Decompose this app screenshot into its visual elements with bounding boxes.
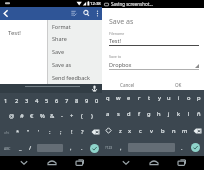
button[interactable]: 4	[32, 93, 42, 108]
button[interactable]: Share	[47, 32, 102, 45]
button[interactable]: Cancel	[102, 80, 153, 90]
button[interactable]: w	[113, 90, 124, 106]
button[interactable]: )	[87, 108, 97, 124]
button[interactable]: /	[26, 140, 35, 156]
button[interactable]: €	[27, 108, 37, 124]
button[interactable]: 6	[52, 93, 62, 108]
button[interactable]: x	[125, 122, 135, 139]
button[interactable]: Home	[38, 156, 66, 170]
button[interactable]: 8	[72, 93, 82, 108]
button[interactable]: "	[23, 124, 33, 140]
button[interactable]: n	[168, 122, 179, 139]
button[interactable]: p	[194, 90, 204, 106]
button[interactable]: Navigate up	[0, 7, 13, 20]
staticText: OK	[175, 82, 182, 88]
button[interactable]: @	[6, 108, 17, 124]
button[interactable]: 1	[0, 93, 11, 108]
staticText: d	[127, 110, 131, 118]
button[interactable]: Format	[47, 20, 102, 32]
button[interactable]: u	[164, 90, 174, 106]
button[interactable]: k	[174, 106, 184, 122]
button[interactable]: Send feedback	[47, 71, 102, 84]
button[interactable]: Back	[112, 156, 140, 170]
button[interactable]: Search	[80, 7, 93, 20]
button[interactable]: !	[66, 124, 77, 140]
button[interactable]: ,	[116, 139, 126, 156]
button[interactable]: j	[164, 106, 174, 122]
button[interactable]: Home	[140, 156, 168, 170]
staticText: )	[91, 112, 93, 120]
button[interactable]: Recent apps	[66, 156, 94, 170]
button[interactable]: Shift	[102, 122, 115, 139]
button[interactable]: Voice input	[91, 85, 98, 92]
staticText: 0	[95, 97, 99, 105]
button[interactable]: ABC	[0, 140, 14, 156]
button[interactable]: '	[33, 124, 44, 140]
staticText: ,	[70, 144, 72, 152]
staticText: l	[188, 110, 190, 118]
staticText: y	[158, 94, 161, 102]
button[interactable]: (	[77, 108, 87, 124]
button[interactable]: ?123	[102, 139, 116, 156]
button[interactable]: l	[184, 106, 194, 122]
button[interactable]: 7	[62, 93, 72, 108]
button[interactable]: :	[44, 124, 55, 140]
button[interactable]: 0	[92, 93, 102, 108]
staticText: Format	[52, 23, 71, 30]
button[interactable]: r	[134, 90, 144, 106]
button[interactable]: 2	[11, 93, 22, 108]
button[interactable]: .	[177, 139, 187, 156]
button[interactable]: 3	[22, 93, 32, 108]
button[interactable]: Enter	[90, 144, 99, 153]
button[interactable]: Save	[47, 45, 102, 58]
button[interactable]: ;	[55, 124, 66, 140]
button[interactable]: t	[144, 90, 154, 106]
button[interactable]: z	[115, 122, 125, 139]
button[interactable]: OK	[153, 80, 204, 90]
button[interactable]: Recent apps	[168, 156, 196, 170]
button[interactable]: 5	[42, 93, 52, 108]
button[interactable]: f	[134, 106, 144, 122]
button[interactable]: Delete	[88, 124, 102, 140]
button[interactable]: ñ	[194, 106, 204, 122]
staticText: Share	[52, 35, 67, 42]
button[interactable]: Delete	[190, 122, 204, 139]
button[interactable]: 9	[82, 93, 92, 108]
button[interactable]: +	[67, 108, 77, 124]
staticText: o	[187, 94, 191, 102]
button[interactable]: ?	[77, 124, 88, 140]
button[interactable]: Enter	[191, 143, 200, 152]
button[interactable]: a	[102, 106, 113, 122]
button[interactable]: y	[154, 90, 164, 106]
button[interactable]: More symbols	[0, 124, 13, 140]
button[interactable]: -	[57, 108, 67, 124]
button[interactable]: &	[47, 108, 57, 124]
button[interactable]: g	[144, 106, 154, 122]
button[interactable]: c	[135, 122, 146, 139]
button[interactable]: s	[113, 106, 124, 122]
button[interactable]: Dropbox	[109, 61, 199, 68]
button[interactable]: b	[157, 122, 168, 139]
button[interactable]: More options	[93, 9, 102, 18]
button[interactable]: i	[174, 90, 184, 106]
staticText: Save	[52, 48, 65, 55]
button[interactable]: Back	[10, 156, 38, 170]
button[interactable]: #	[17, 108, 27, 124]
button[interactable]: .	[76, 140, 87, 156]
button[interactable]: *	[13, 124, 23, 140]
staticText: w	[116, 94, 121, 102]
button[interactable]: %	[37, 108, 47, 124]
button[interactable]: v	[146, 122, 157, 139]
button[interactable]: Save as	[47, 58, 102, 71]
button[interactable]: _	[14, 140, 26, 156]
button[interactable]: q	[102, 90, 113, 106]
button[interactable]: ,	[65, 140, 76, 156]
button[interactable]: m	[179, 122, 190, 139]
button[interactable]: Insert	[67, 7, 80, 20]
button[interactable]: e	[124, 90, 134, 106]
button[interactable]: h	[154, 106, 164, 122]
button[interactable]: d	[124, 106, 134, 122]
button[interactable]: o	[184, 90, 194, 106]
